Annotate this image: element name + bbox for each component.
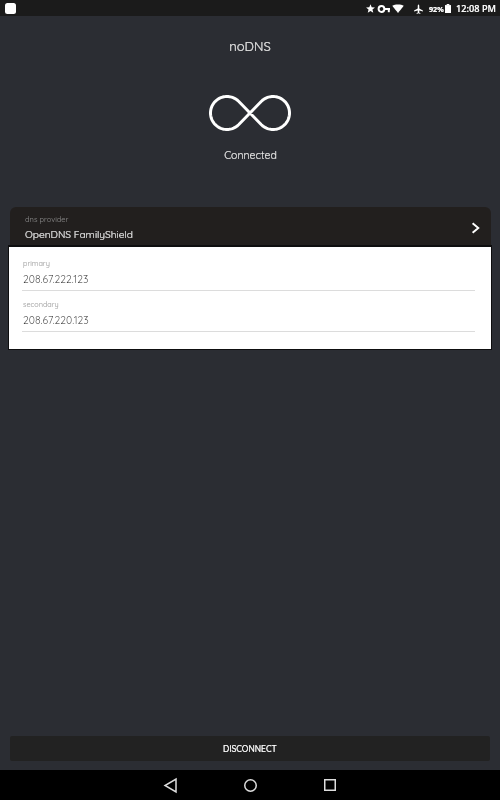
button[interactable]: DISCONNECT: [10, 736, 490, 761]
button[interactable]: dns provider: [10, 207, 491, 245]
staticText: noDNS: [229, 38, 271, 54]
staticText: DISCONNECT: [223, 743, 277, 754]
staticText: 12:08 PM: [456, 2, 496, 15]
other: Choose DNS provider: [470, 222, 480, 234]
staticText: primary: [23, 259, 50, 268]
button[interactable]: Recents: [308, 770, 352, 800]
staticText: 208.67.222.123: [23, 273, 89, 286]
staticText: Connected: [224, 148, 277, 161]
staticText: 92%: [429, 4, 444, 14]
staticText: dns provider: [25, 214, 69, 223]
button[interactable]: Back: [148, 770, 192, 800]
staticText: secondary: [23, 300, 59, 309]
staticText: OpenDNS FamilyShield: [25, 228, 133, 241]
button[interactable]: Home: [228, 770, 272, 800]
staticText: 208.67.220.123: [23, 314, 89, 327]
